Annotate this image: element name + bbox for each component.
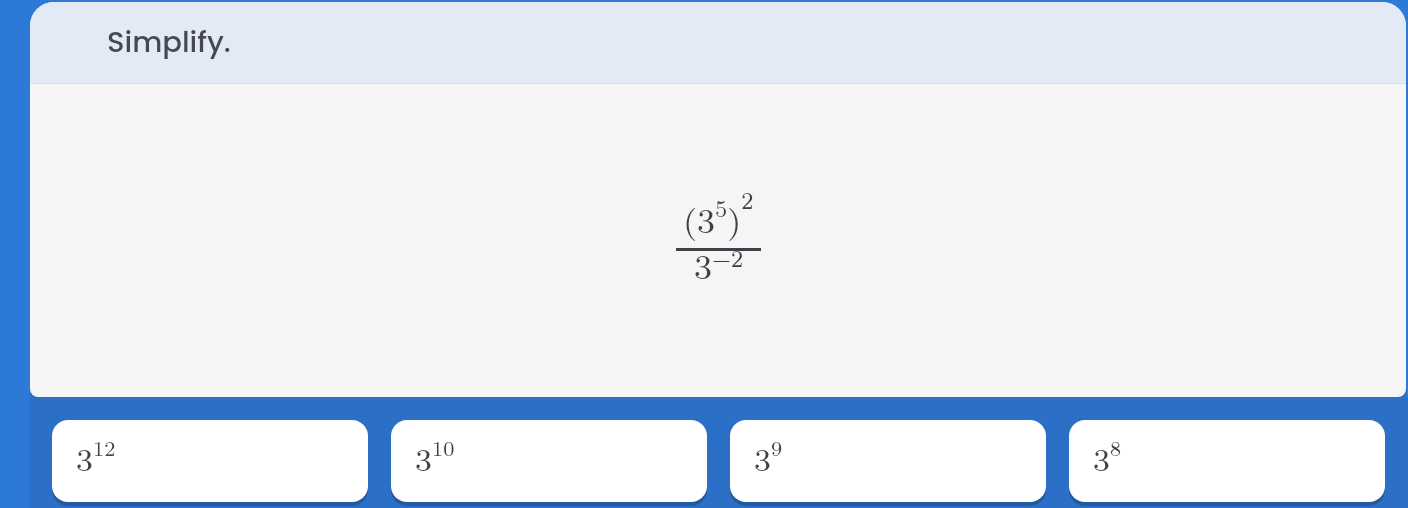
staticText: 39 xyxy=(754,432,783,480)
button[interactable]: 312 xyxy=(52,420,368,502)
staticText: (35)2 xyxy=(683,183,754,243)
button[interactable]: 39 xyxy=(730,420,1046,502)
staticText: 310 xyxy=(415,432,455,480)
staticText: 3−2 xyxy=(694,241,744,289)
staticText: 312 xyxy=(76,432,116,480)
button[interactable]: 38 xyxy=(1069,420,1385,502)
button[interactable]: 310 xyxy=(391,420,707,502)
staticText: Simplify. xyxy=(107,22,231,63)
staticText: 38 xyxy=(1093,432,1122,480)
